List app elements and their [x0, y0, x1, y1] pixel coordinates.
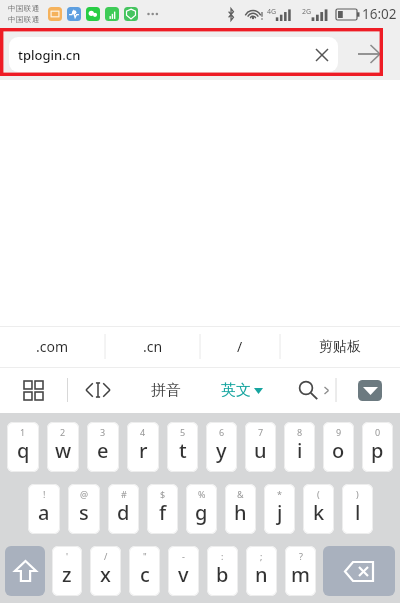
staticText: 英文 — [221, 381, 251, 400]
button[interactable]: Backspace — [323, 546, 395, 596]
button[interactable]: @ — [68, 484, 100, 534]
button[interactable]: ) — [342, 484, 373, 534]
button[interactable]: 8 — [284, 422, 315, 472]
button[interactable]: ! — [28, 484, 60, 534]
staticText: d — [117, 499, 130, 526]
staticText: 3 — [100, 426, 106, 438]
staticText: x — [100, 561, 111, 588]
staticText: l — [355, 499, 361, 526]
staticText: 7 — [258, 426, 264, 438]
staticText: ? — [299, 550, 303, 562]
button[interactable]: 0 — [362, 422, 393, 472]
staticText: * — [277, 488, 282, 500]
staticText: s — [79, 499, 89, 526]
button[interactable]: Go — [338, 28, 383, 80]
button[interactable]: $ — [147, 484, 178, 534]
button[interactable]: ( — [303, 484, 334, 534]
button[interactable]: 1 — [7, 422, 39, 472]
staticText: z — [62, 561, 72, 588]
staticText: / — [104, 550, 108, 562]
button[interactable]: .com — [0, 326, 105, 367]
button[interactable]: 5 — [167, 422, 198, 472]
button[interactable]: ? — [285, 546, 316, 596]
staticText: i — [297, 437, 303, 464]
staticText: y — [216, 437, 227, 464]
staticText: 4 — [140, 426, 146, 438]
button[interactable]: Keyboard modes — [0, 367, 67, 413]
staticText: q — [17, 437, 30, 464]
staticText: j — [277, 499, 283, 526]
staticText: : — [221, 550, 224, 562]
button[interactable]: ' — [52, 546, 82, 596]
staticText: u — [254, 437, 267, 464]
button[interactable]: / — [90, 546, 121, 596]
button[interactable]: / — [200, 326, 280, 367]
staticText: ) — [356, 488, 359, 500]
staticText: 2 — [60, 426, 66, 438]
button[interactable]: % — [186, 484, 217, 534]
staticText: m — [291, 561, 310, 588]
staticText: ( — [317, 488, 320, 500]
staticText: ; — [260, 550, 263, 562]
button[interactable]: 拼音 — [129, 367, 202, 413]
staticText: r — [139, 437, 148, 464]
staticText: # — [121, 488, 127, 500]
staticText: c — [140, 561, 150, 588]
staticText: g — [195, 499, 208, 526]
staticText: n — [255, 561, 268, 588]
button[interactable]: & — [225, 484, 256, 534]
staticText: tplogin.cn — [18, 46, 81, 64]
staticText: / — [237, 337, 243, 356]
button[interactable]: 4 — [127, 422, 159, 472]
staticText: 剪贴板 — [319, 338, 361, 356]
button[interactable]: Clear text — [310, 43, 334, 67]
button[interactable]: * — [264, 484, 295, 534]
staticText: h — [234, 499, 247, 526]
button[interactable]: : — [207, 546, 238, 596]
button[interactable]: 3 — [87, 422, 119, 472]
button[interactable]: tplogin.cn — [9, 37, 338, 72]
button[interactable]: Hide keyboard — [358, 380, 382, 401]
button[interactable]: 英文 — [202, 367, 282, 413]
staticText: " — [143, 550, 147, 562]
staticText: 16:02 — [362, 5, 397, 23]
staticText: 9 — [336, 426, 342, 438]
button[interactable]: 剪贴板 — [280, 326, 400, 367]
staticText: $ — [160, 488, 166, 500]
staticText: e — [97, 437, 109, 464]
staticText: 2G — [302, 7, 312, 17]
button[interactable]: 7 — [245, 422, 276, 472]
button[interactable]: Search — [282, 367, 344, 413]
staticText: % — [198, 488, 206, 500]
staticText: @ — [80, 488, 89, 500]
button[interactable]: 2 — [47, 422, 79, 472]
staticText: .com — [36, 337, 69, 356]
staticText: 4G — [267, 7, 277, 17]
button[interactable]: .cn — [105, 326, 200, 367]
button[interactable]: # — [108, 484, 139, 534]
staticText: 0 — [375, 426, 381, 438]
staticText: ! — [43, 488, 46, 500]
button[interactable]: ; — [246, 546, 277, 596]
button[interactable]: " — [129, 546, 160, 596]
staticText: f — [159, 499, 167, 526]
staticText: t — [179, 437, 187, 464]
staticText: b — [216, 561, 229, 588]
staticText: w — [55, 437, 72, 464]
button[interactable]: Move cursor — [67, 367, 129, 413]
button[interactable]: - — [168, 546, 199, 596]
staticText: 5 — [180, 426, 186, 438]
button[interactable]: Shift — [5, 546, 45, 596]
staticText: 8 — [297, 426, 303, 438]
staticText: 中国联通 — [8, 4, 40, 13]
staticText: .cn — [143, 337, 163, 356]
button[interactable]: 6 — [206, 422, 237, 472]
staticText: ' — [66, 550, 69, 562]
staticText: a — [38, 499, 50, 526]
button[interactable]: 9 — [323, 422, 354, 472]
staticText: & — [237, 488, 244, 500]
staticText: 中国联通 — [8, 15, 40, 24]
staticText: k — [313, 499, 325, 526]
staticText: o — [332, 437, 345, 464]
staticText: 6 — [219, 426, 225, 438]
